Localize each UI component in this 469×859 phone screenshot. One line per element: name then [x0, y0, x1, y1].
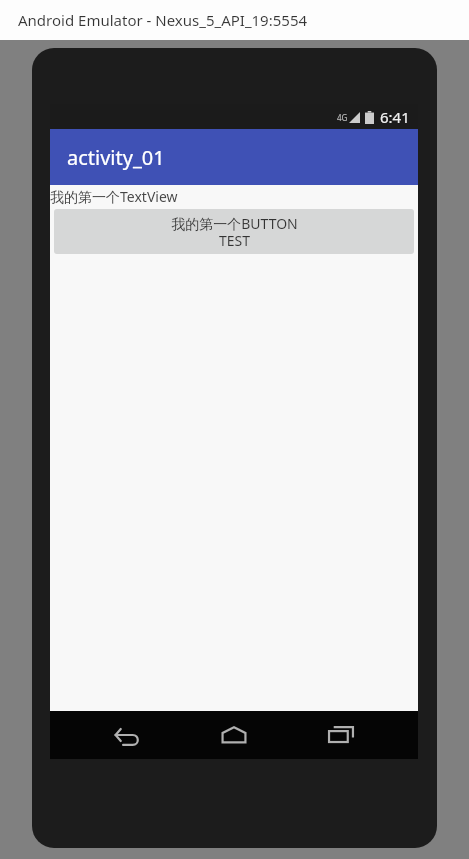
button[interactable]: Back: [97, 711, 157, 759]
staticText: Android Emulator - Nexus_5_API_19:5554: [18, 10, 308, 30]
staticText: 4G: [337, 112, 348, 123]
staticText: 我的第一个BUTTON TEST: [171, 214, 298, 250]
staticText: 我的第一个TextView: [50, 187, 178, 206]
button[interactable]: Recents: [311, 711, 371, 759]
button[interactable]: 我的第一个BUTTON TEST: [54, 209, 414, 254]
button[interactable]: Home: [204, 711, 264, 759]
staticText: 6:41: [380, 107, 410, 127]
staticText: activity_01: [67, 144, 165, 171]
button[interactable]: activity_01: [50, 129, 418, 185]
